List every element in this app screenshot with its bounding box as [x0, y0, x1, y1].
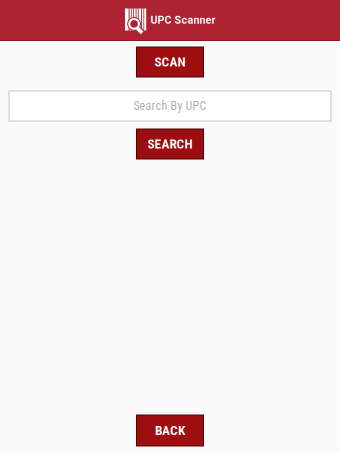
staticText: BACK [155, 423, 185, 438]
staticText: UPC Scanner [150, 14, 215, 26]
button[interactable]: Search By UPC [9, 91, 331, 121]
button[interactable]: BACK [136, 415, 203, 446]
staticText: SCAN [154, 54, 185, 70]
button[interactable]: SCAN [136, 47, 203, 77]
staticText: Search By UPC [133, 99, 206, 113]
staticText: SEARCH [147, 136, 192, 152]
button[interactable]: SEARCH [136, 129, 203, 159]
